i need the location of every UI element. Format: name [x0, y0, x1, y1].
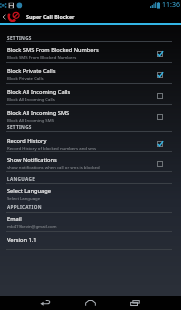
staticText: Version 1.1	[7, 236, 37, 244]
staticText: Record History of blocked numbers and sm…	[7, 145, 97, 151]
staticText: Block All Incoming SMS	[7, 117, 54, 123]
button[interactable]: Select Language	[0, 184, 181, 205]
staticText: Block SMS From Blocked Numbers	[7, 46, 99, 54]
staticText: Block Private Calls	[7, 75, 44, 81]
button[interactable]: Record History	[0, 132, 181, 152]
staticText: Show Notifications	[7, 156, 57, 164]
button[interactable]: Block All Incoming Calls	[0, 84, 181, 105]
staticText: Record History	[7, 137, 47, 145]
staticText: Block All Incoming Calls	[7, 88, 71, 96]
button[interactable]: Block All Incoming SMS	[0, 105, 181, 126]
staticText: Block All Incoming SMS	[7, 109, 70, 117]
staticText: Super Call Blocker	[26, 13, 75, 20]
staticText: APPLICATION	[7, 204, 42, 210]
staticText: SETTINGS	[7, 35, 32, 41]
staticText: mb419kevin@gmail.com	[7, 223, 57, 229]
staticText: show notifications when call or sms is b…	[7, 164, 100, 170]
staticText: SETTINGS	[7, 124, 32, 130]
button[interactable]: Version 1.1	[0, 232, 181, 250]
other: Navigate up	[2, 13, 6, 21]
button[interactable]: Show Notifications	[0, 152, 181, 172]
button[interactable]: Block SMS From Blocked Numbers	[0, 42, 181, 63]
staticText: Block SMS From Blocked Numbers	[7, 54, 77, 60]
staticText: Select Language	[7, 187, 51, 195]
staticText: Select Language	[7, 195, 41, 201]
button[interactable]: Navigate up	[0, 10, 181, 23]
staticText: Block Private Calls	[7, 67, 56, 75]
button[interactable]: Email	[0, 213, 181, 232]
staticText: LANGUAGE	[7, 176, 36, 182]
button[interactable]: Home	[78, 296, 103, 310]
staticText: Block All Incoming Calls	[7, 96, 55, 102]
staticText: 11:36	[162, 0, 180, 10]
staticText: Email	[7, 215, 22, 223]
button[interactable]: Recent apps	[123, 296, 148, 310]
button[interactable]: Block Private Calls	[0, 63, 181, 84]
button[interactable]: Back	[33, 296, 58, 310]
